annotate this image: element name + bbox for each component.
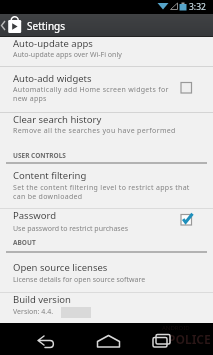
button[interactable]: [181, 213, 194, 226]
staticText: Clear search history: [13, 113, 102, 126]
staticText: Password: [13, 209, 56, 222]
staticText: Settings: [27, 19, 66, 33]
staticText: ABOUT: [13, 238, 36, 247]
button[interactable]: [0, 67, 213, 112]
button[interactable]: [0, 293, 213, 323]
staticText: Use password to restrict purchases: [13, 224, 129, 234]
staticText: POLICE: [168, 331, 211, 347]
button[interactable]: [0, 253, 213, 292]
staticText: Set the content filtering level to restr…: [13, 183, 190, 201]
button[interactable]: [0, 113, 213, 143]
staticText: License details for open source software: [13, 275, 146, 285]
staticText: Remove all the searches you have perform…: [13, 126, 176, 136]
staticText: 3:32: [189, 1, 206, 13]
button[interactable]: [86, 323, 131, 355]
staticText: Auto-add widgets: [13, 72, 92, 85]
button[interactable]: [0, 164, 213, 208]
staticText: Auto-update apps over Wi-Fi only: [13, 50, 122, 60]
staticText: ANDROID: [162, 324, 190, 332]
staticText: Automatically add Home screen widgets fo…: [13, 85, 169, 103]
button[interactable]: [25, 323, 70, 355]
button[interactable]: [0, 38, 213, 66]
staticText: Build version: [13, 293, 71, 306]
button[interactable]: [0, 14, 213, 37]
button[interactable]: [181, 81, 194, 94]
button[interactable]: [0, 209, 213, 236]
staticText: Content filtering: [13, 169, 87, 182]
staticText: Open source licenses: [13, 261, 108, 274]
staticText: Auto-update apps: [13, 37, 93, 50]
button[interactable]: [142, 323, 187, 355]
staticText: USER CONTROLS: [13, 151, 66, 160]
staticText: Version: 4.4.: [13, 307, 54, 317]
